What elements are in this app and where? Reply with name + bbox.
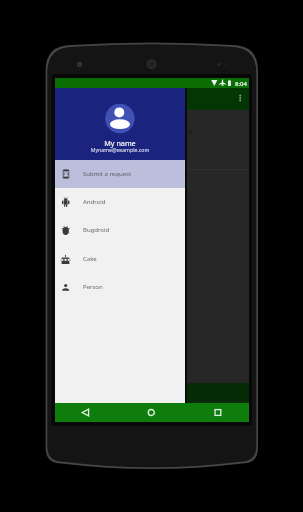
staticText: 8:04	[235, 80, 247, 88]
staticText: Myname@example.com	[55, 146, 185, 153]
button[interactable]: Home	[133, 403, 170, 422]
button[interactable]: Back	[75, 403, 112, 422]
button[interactable]: Person	[55, 273, 185, 301]
staticText: Cake	[83, 255, 97, 263]
staticText: Android	[83, 198, 106, 206]
staticText: item	[178, 128, 192, 137]
button[interactable]: Cake	[55, 245, 185, 273]
button[interactable]: Android	[55, 188, 185, 216]
button[interactable]: Bugdroid	[55, 216, 185, 244]
staticText: Submit a request	[83, 170, 132, 178]
staticText: Person	[83, 283, 103, 291]
staticText: My name	[55, 138, 185, 148]
button[interactable]: Submit a request	[55, 160, 185, 188]
button[interactable]: More options	[233, 88, 247, 110]
staticText: Bugdroid	[83, 226, 110, 234]
button[interactable]: Recent apps	[199, 403, 236, 422]
